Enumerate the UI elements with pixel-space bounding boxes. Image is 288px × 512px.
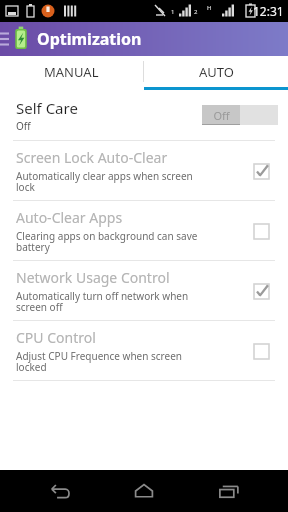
button[interactable]: Network Usage Control, enabled bbox=[248, 278, 274, 304]
button[interactable]: Screen Lock Auto-Clear, enabled bbox=[248, 158, 274, 184]
staticText: Off bbox=[16, 119, 31, 133]
button[interactable]: CPU Control bbox=[0, 321, 288, 380]
staticText: Adjust CPU Frequence when screen locked bbox=[16, 349, 182, 374]
button[interactable]: Auto-Clear Apps bbox=[0, 201, 288, 260]
staticText: Auto-Clear Apps bbox=[16, 208, 123, 227]
button[interactable]: CPU Control, disabled bbox=[248, 338, 274, 364]
staticText: Clearing apps on background can save bat… bbox=[16, 229, 198, 254]
button[interactable]: Self Care switch, Off bbox=[202, 105, 278, 125]
staticText: Off bbox=[213, 108, 230, 123]
staticText: 2 bbox=[194, 8, 198, 16]
button[interactable]: Recent apps bbox=[203, 470, 255, 512]
staticText: CPU Control bbox=[16, 328, 96, 347]
staticText: Automatically clear apps when screen loc… bbox=[16, 169, 193, 194]
staticText: Screen Lock Auto-Clear bbox=[16, 148, 168, 167]
staticText: 1 bbox=[171, 8, 175, 16]
staticText: Network Usage Control bbox=[16, 268, 170, 287]
staticText: Self Care bbox=[16, 98, 78, 118]
button[interactable]: Home bbox=[118, 470, 170, 512]
button[interactable]: Network Usage Control bbox=[0, 261, 288, 320]
staticText: H bbox=[207, 4, 212, 12]
staticText: Automatically turn off network when scre… bbox=[16, 289, 189, 314]
staticText: 12:31 bbox=[253, 3, 284, 19]
button[interactable]: AUTO bbox=[144, 56, 288, 87]
button[interactable]: Open navigation menu bbox=[0, 22, 13, 56]
button[interactable]: MANUAL bbox=[0, 56, 143, 87]
button[interactable]: Self Care bbox=[0, 90, 288, 140]
button[interactable]: Auto-Clear Apps, disabled bbox=[248, 218, 274, 244]
button[interactable]: Screen Lock Auto-Clear bbox=[0, 141, 288, 200]
staticText: AUTO bbox=[199, 63, 234, 81]
button[interactable]: Back bbox=[33, 470, 85, 512]
staticText: Optimization bbox=[37, 28, 142, 50]
staticText: MANUAL bbox=[44, 63, 99, 81]
